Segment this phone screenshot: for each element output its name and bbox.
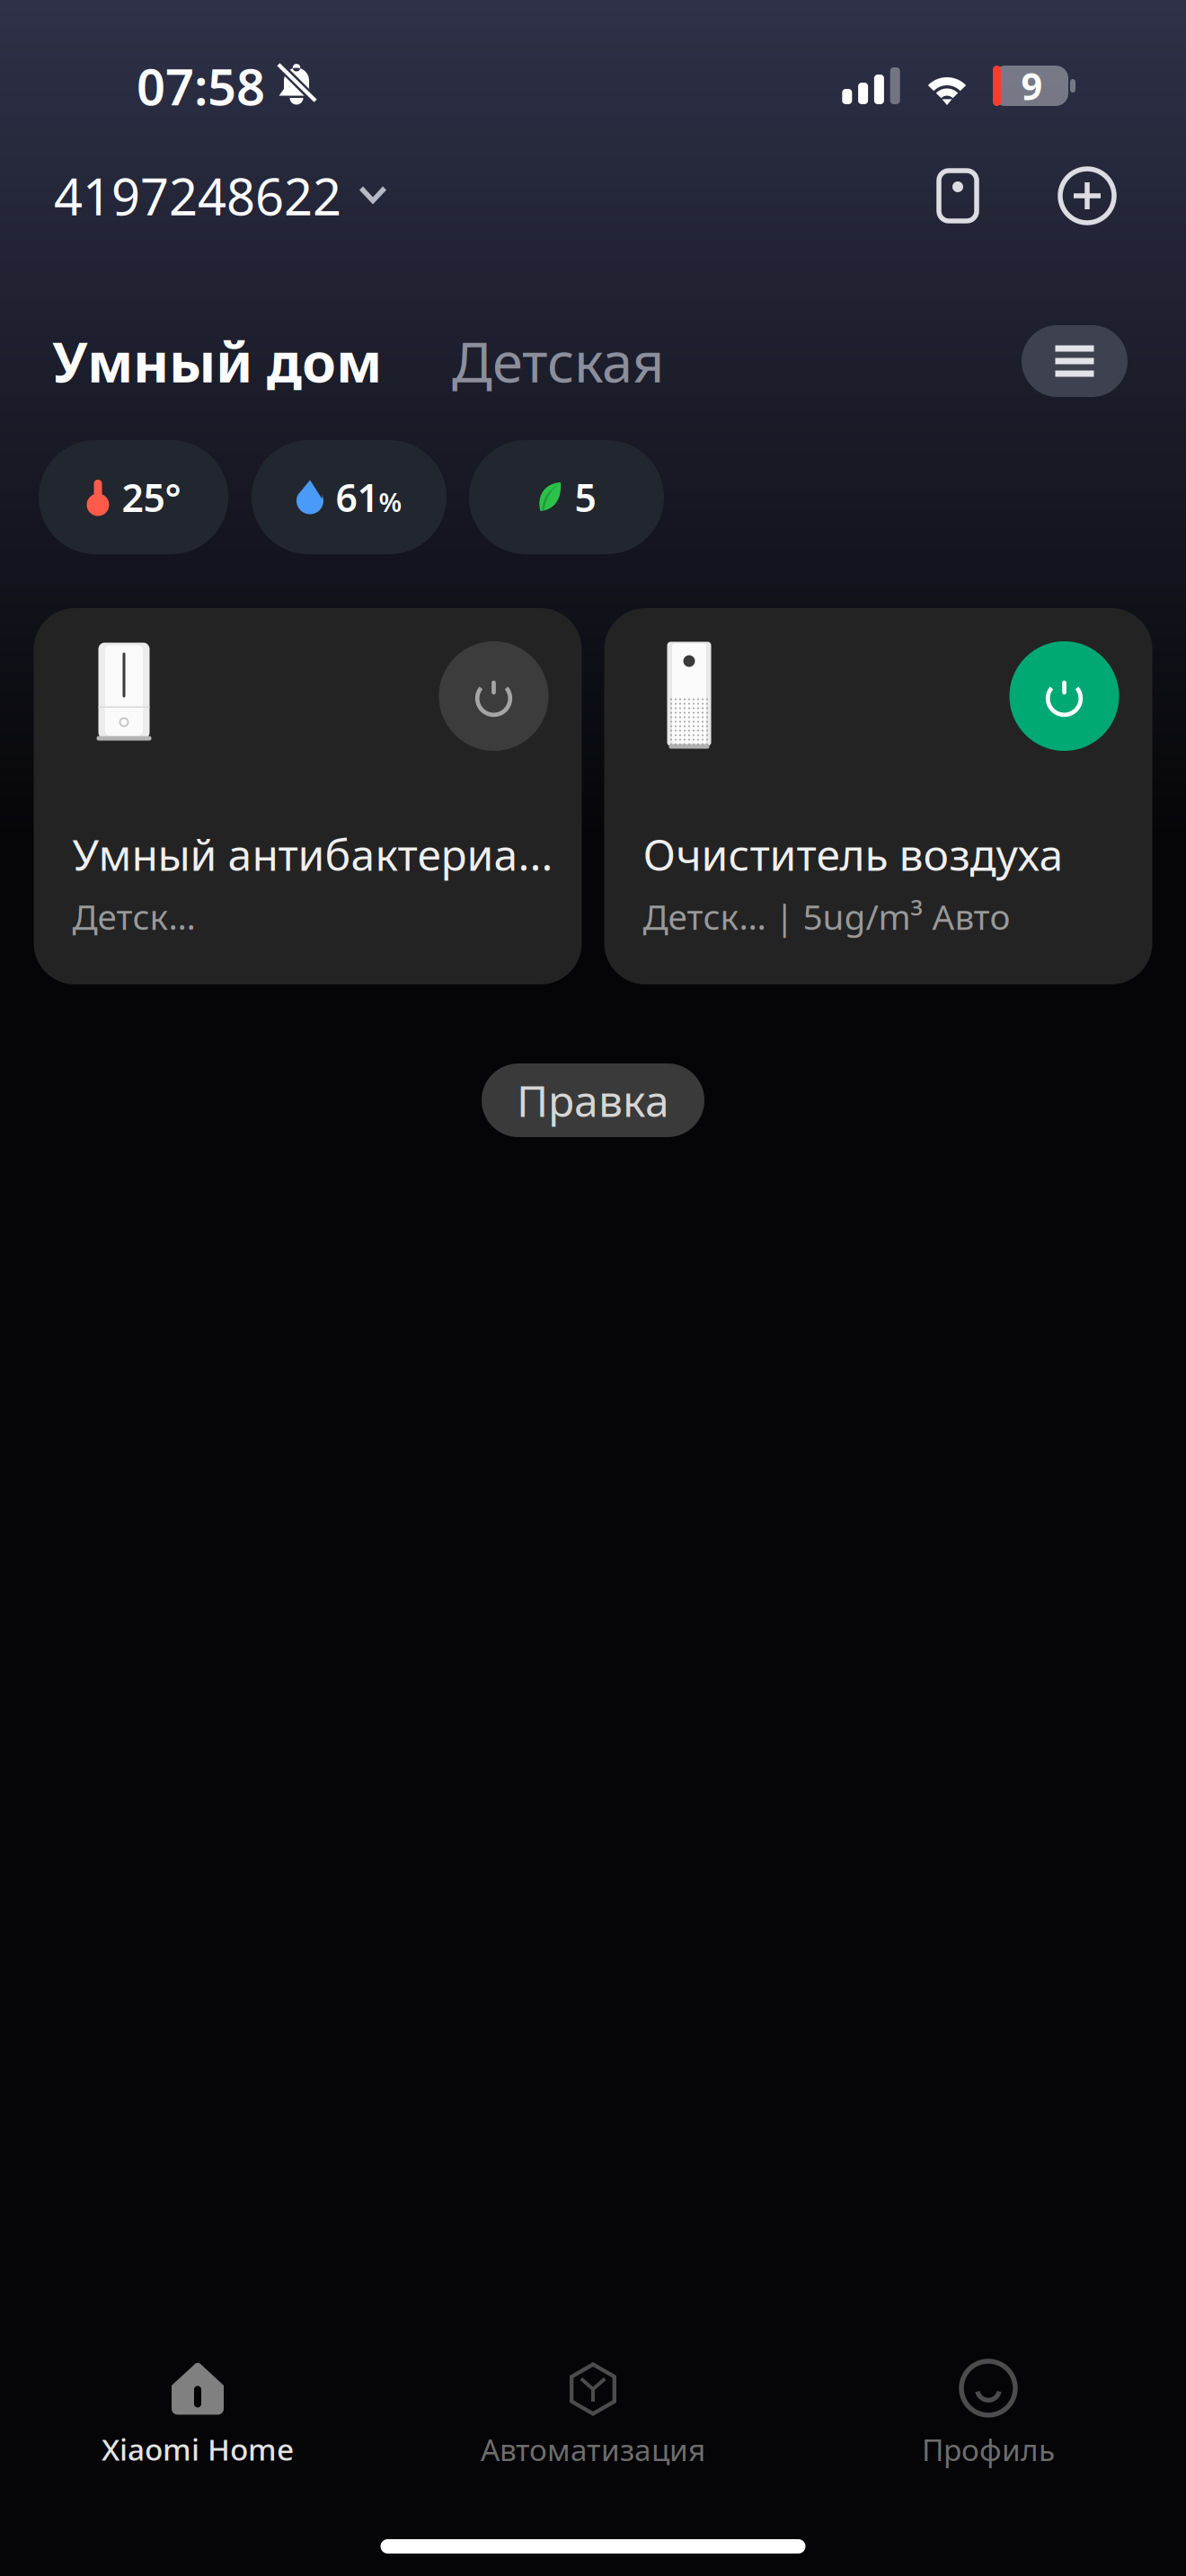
staticText: 07:58	[137, 52, 265, 119]
staticText: Детская	[452, 325, 664, 398]
button[interactable]: 25°	[39, 440, 228, 554]
button[interactable]: 61	[252, 440, 447, 554]
staticText: 4197248622	[54, 162, 341, 229]
button[interactable]: Умный антибактериа...	[34, 608, 582, 984]
button[interactable]: Remote	[939, 171, 977, 221]
staticText: Очиститель воздуха	[643, 825, 1063, 883]
staticText: 5	[575, 472, 596, 523]
staticText: Детск...	[72, 893, 195, 940]
button[interactable]: Правка	[482, 1063, 704, 1137]
staticText: Xiaomi Home	[102, 2429, 294, 2469]
button[interactable]: Профиль	[791, 2361, 1186, 2469]
button[interactable]: Автоматизация	[395, 2361, 791, 2469]
staticText: Умный дом	[52, 325, 382, 398]
button[interactable]: Детская	[382, 325, 664, 398]
staticText: Детск... | 5ug/m³ Авто	[643, 893, 1010, 940]
staticText: Умный антибактериа...	[72, 825, 553, 883]
staticText: 61	[336, 472, 379, 523]
button[interactable]: Menu	[1022, 325, 1128, 397]
button[interactable]: 5	[469, 440, 664, 554]
button[interactable]: 4197248622	[54, 155, 386, 236]
button[interactable]: Умный дом	[52, 325, 382, 398]
staticText: %	[379, 484, 402, 519]
button[interactable]: Очиститель воздуха	[604, 608, 1152, 984]
staticText: Правка	[517, 1072, 669, 1129]
staticText: 25°	[122, 472, 181, 523]
staticText: Автоматизация	[481, 2430, 705, 2469]
staticText: 9	[1021, 61, 1043, 110]
button[interactable]: Xiaomi Home	[0, 2361, 395, 2469]
staticText: Профиль	[922, 2430, 1055, 2469]
button[interactable]: Add device	[977, 169, 1114, 223]
